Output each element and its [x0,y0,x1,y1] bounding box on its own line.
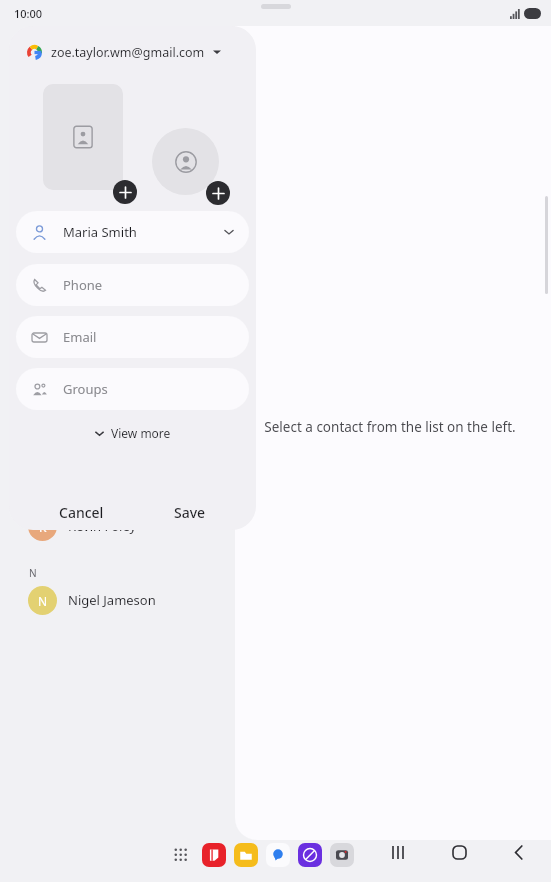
button[interactable]: Save [164,496,216,528]
staticText: K [39,519,47,535]
button[interactable]: Recents [383,836,415,868]
button[interactable]: N [14,578,244,622]
button[interactable]: Notes [202,843,226,867]
staticText: zoe.taylor.wm@gmail.com [51,44,205,61]
button[interactable]: Camera [330,843,354,867]
button[interactable]: Phone [16,264,249,306]
staticText: View more [111,425,171,441]
button[interactable]: Files [234,843,258,867]
staticText: Kevin Foley [68,517,137,535]
staticText: Select a contact from the list on the le… [264,418,516,436]
staticText: N [29,566,37,580]
button[interactable]: Add photo [113,180,137,204]
button[interactable]: Home [443,836,475,868]
button[interactable]: Messages [266,843,290,867]
staticText: Save [174,503,206,522]
button[interactable]: Back [503,836,535,868]
button[interactable]: Cancel [49,496,114,528]
button[interactable]: Add photo [43,84,123,190]
staticText: N [38,593,48,609]
button[interactable]: Groups [16,368,249,410]
staticText: Cancel [59,503,104,522]
button[interactable]: Add avatar [206,181,230,205]
staticText: Groups [63,380,108,398]
button[interactable]: View more [9,418,256,448]
button[interactable]: Email [16,316,249,358]
button[interactable]: Add avatar [152,128,219,195]
button[interactable]: zoe.taylor.wm@gmail.com [23,36,225,68]
button[interactable]: Apps [168,842,194,868]
button[interactable]: K [14,504,244,548]
staticText: Email [63,328,97,346]
button[interactable]: Internet [298,843,322,867]
staticText: Phone [63,276,103,294]
staticText: Maria Smith [63,223,137,241]
staticText: 10:00 [14,6,43,21]
staticText: Nigel Jameson [68,591,156,609]
button[interactable]: Maria Smith [16,211,249,253]
